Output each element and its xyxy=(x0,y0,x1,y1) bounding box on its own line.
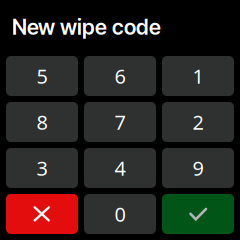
staticText: 8 xyxy=(36,109,47,135)
staticText: New wipe code xyxy=(12,14,161,40)
staticText: 1 xyxy=(192,63,203,89)
button[interactable]: 4 xyxy=(84,148,156,188)
staticText: 5 xyxy=(36,63,47,89)
staticText: 9 xyxy=(192,155,203,181)
staticText: 0 xyxy=(114,201,125,227)
button[interactable]: 9 xyxy=(162,148,234,188)
button[interactable]: 2 xyxy=(162,102,234,142)
staticText: 3 xyxy=(36,155,47,181)
button[interactable]: 5 xyxy=(6,56,78,96)
button[interactable]: 6 xyxy=(84,56,156,96)
staticText: 4 xyxy=(114,155,125,181)
button[interactable]: 3 xyxy=(6,148,78,188)
button[interactable]: Confirm xyxy=(162,194,234,234)
staticText: 7 xyxy=(114,109,125,135)
button[interactable]: Delete xyxy=(6,194,78,234)
button[interactable]: 0 xyxy=(84,194,156,234)
staticText: 2 xyxy=(192,109,203,135)
button[interactable]: 7 xyxy=(84,102,156,142)
button[interactable]: 1 xyxy=(162,56,234,96)
button[interactable]: 8 xyxy=(6,102,78,142)
staticText: 6 xyxy=(114,63,125,89)
